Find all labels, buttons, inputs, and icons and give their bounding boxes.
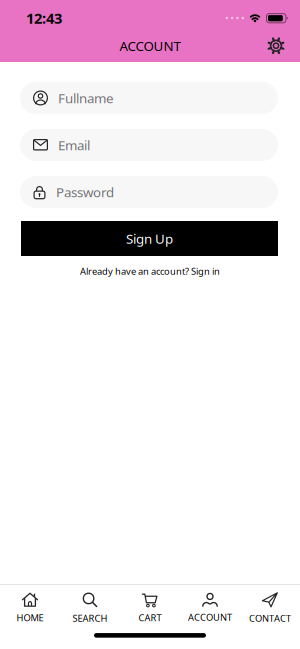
- button[interactable]: HOME: [0, 591, 60, 625]
- staticText: HOME: [16, 611, 43, 624]
- button[interactable]: CART: [120, 591, 180, 625]
- staticText: CART: [138, 611, 161, 624]
- staticText: Email: [58, 136, 90, 154]
- staticText: Already have an account? Sign in: [80, 265, 220, 277]
- staticText: 12:43: [26, 8, 62, 28]
- staticText: SEARCH: [72, 612, 107, 624]
- button[interactable]: Email: [20, 129, 278, 161]
- button[interactable]: Sign Up: [21, 221, 278, 256]
- button[interactable]: Already have an account? Sign in: [80, 265, 220, 277]
- button[interactable]: Password: [20, 176, 278, 208]
- staticText: Sign Up: [126, 230, 173, 247]
- staticText: Fullname: [58, 89, 114, 107]
- button[interactable]: CONTACT: [240, 591, 300, 625]
- button[interactable]: ACCOUNT: [180, 591, 240, 625]
- button[interactable]: Settings: [261, 31, 291, 61]
- staticText: CONTACT: [249, 612, 291, 624]
- button[interactable]: SEARCH: [60, 591, 120, 625]
- staticText: ACCOUNT: [119, 37, 180, 55]
- staticText: Password: [56, 183, 114, 201]
- button[interactable]: Fullname: [20, 82, 278, 114]
- staticText: ACCOUNT: [188, 611, 232, 623]
